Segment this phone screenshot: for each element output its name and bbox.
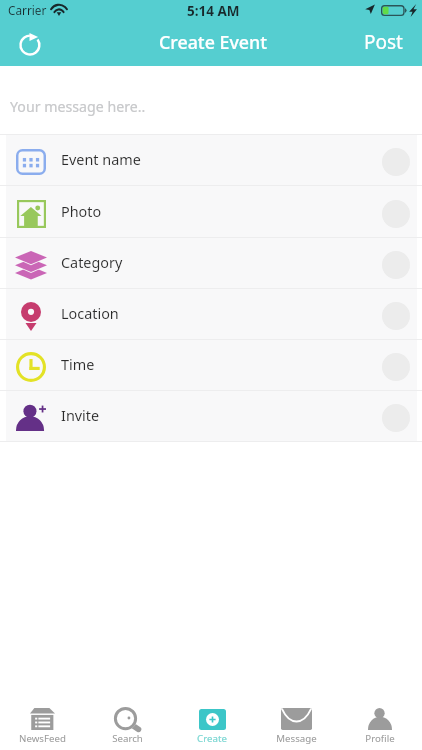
- button[interactable]: Message: [254, 701, 338, 745]
- button[interactable]: Profile: [338, 701, 422, 745]
- staticText: Post: [364, 29, 403, 53]
- staticText: Your message here..: [10, 97, 146, 116]
- staticText: Event name: [61, 150, 141, 170]
- button[interactable]: Category: [0, 238, 422, 288]
- staticText: Invite: [61, 406, 100, 426]
- staticText: Profile: [365, 732, 395, 745]
- button[interactable]: Photo: [0, 186, 422, 237]
- staticText: Create Event: [159, 30, 268, 54]
- staticText: Carrier: [8, 2, 47, 18]
- staticText: Time: [61, 355, 95, 375]
- staticText: Photo: [61, 202, 102, 222]
- button[interactable]: Post: [348, 21, 422, 66]
- button[interactable]: Location: [0, 289, 422, 339]
- staticText: Create: [197, 732, 227, 745]
- button[interactable]: Refresh: [8, 22, 52, 66]
- staticText: Search: [112, 732, 143, 745]
- staticText: Location: [61, 304, 119, 324]
- staticText: Category: [61, 253, 123, 273]
- staticText: NewsFeed: [19, 732, 66, 745]
- button[interactable]: Time: [0, 340, 422, 390]
- button[interactable]: Search: [85, 701, 170, 745]
- staticText: 5:14 AM: [187, 2, 240, 20]
- staticText: Message: [276, 732, 317, 745]
- button[interactable]: NewsFeed: [0, 701, 85, 745]
- button[interactable]: Event name: [0, 135, 422, 185]
- button[interactable]: Create: [170, 701, 254, 745]
- button[interactable]: Invite: [0, 391, 422, 441]
